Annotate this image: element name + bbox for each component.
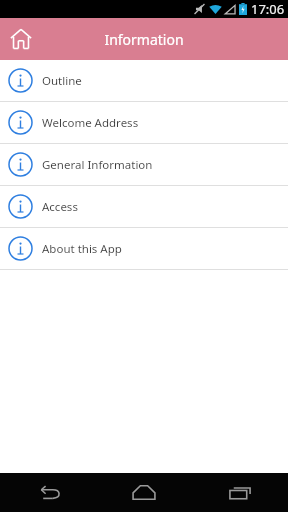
staticText: Welcome Address (42, 115, 139, 131)
staticText: Outline (42, 73, 82, 89)
button[interactable]: Home (96, 473, 192, 512)
button[interactable]: Back (0, 473, 96, 512)
button[interactable]: General Information (0, 144, 288, 185)
staticText: 17:06 (251, 0, 285, 18)
button[interactable]: Home (0, 18, 42, 60)
button[interactable]: About this App (0, 228, 288, 269)
button[interactable]: Recent apps (192, 473, 288, 512)
staticText: Information (0, 30, 288, 49)
staticText: About this App (42, 241, 122, 257)
staticText: Access (42, 199, 78, 215)
button[interactable]: Outline (0, 60, 288, 101)
button[interactable]: Access (0, 186, 288, 227)
staticText: General Information (42, 157, 153, 173)
button[interactable]: Welcome Address (0, 102, 288, 143)
